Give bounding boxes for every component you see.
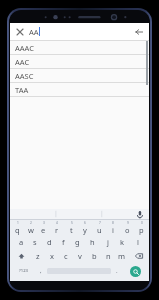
button[interactable]: 6	[78, 220, 92, 235]
button[interactable]: Back	[132, 25, 145, 38]
staticText: ,	[40, 267, 42, 275]
staticText: u	[97, 225, 102, 235]
button[interactable]: 7	[92, 220, 106, 235]
button[interactable]: 0	[134, 220, 148, 235]
button[interactable]: 9	[120, 220, 134, 235]
staticText: t	[70, 225, 73, 235]
button[interactable]: 5	[64, 220, 78, 235]
button[interactable]: m	[115, 249, 129, 263]
staticText: l	[137, 237, 139, 247]
button[interactable]: 8	[106, 220, 120, 235]
staticText: x	[50, 251, 54, 261]
staticText: 1	[17, 221, 19, 225]
staticText: 0	[141, 221, 143, 225]
staticText: j	[107, 237, 109, 247]
button[interactable]: l	[130, 235, 145, 249]
button[interactable]: 4	[50, 220, 64, 235]
staticText: p	[139, 225, 144, 235]
button[interactable]: Backspace	[129, 249, 148, 263]
button[interactable]: .	[111, 263, 123, 279]
staticText: 3	[43, 221, 45, 225]
staticText: 5	[71, 221, 73, 225]
button[interactable]: k	[115, 235, 130, 249]
staticText: s	[33, 237, 37, 247]
button[interactable]: f	[56, 235, 70, 249]
staticText: g	[75, 237, 80, 247]
button[interactable]: j	[100, 235, 115, 249]
staticText: a	[19, 237, 24, 247]
button[interactable]: v	[73, 249, 87, 263]
button[interactable]: Search	[130, 266, 141, 277]
staticText: 2	[30, 221, 32, 225]
button[interactable]: b	[87, 249, 101, 263]
staticText: TAA	[15, 85, 29, 95]
staticText: 8	[112, 221, 114, 225]
button[interactable]: c	[59, 249, 73, 263]
staticText: .	[116, 267, 118, 275]
button[interactable]: ?123	[12, 263, 35, 279]
staticText: o	[125, 225, 130, 235]
button[interactable]: x	[45, 249, 59, 263]
staticText: m	[118, 251, 126, 261]
button[interactable]: n	[101, 249, 115, 263]
staticText: z	[36, 251, 40, 261]
button[interactable]: d	[42, 235, 56, 249]
button[interactable]: s	[28, 235, 42, 249]
button[interactable]: ,	[35, 263, 47, 279]
staticText: r	[55, 225, 59, 235]
button[interactable]: z	[31, 249, 45, 263]
staticText: w	[28, 225, 34, 235]
staticText: 9	[127, 221, 129, 225]
staticText: 4	[56, 221, 58, 225]
button[interactable]: AASC	[10, 68, 149, 82]
staticText: ?123	[19, 268, 29, 274]
button[interactable]: g	[70, 235, 85, 249]
button[interactable]: Clear	[10, 23, 149, 40]
button[interactable]: AAC	[10, 54, 149, 68]
staticText: f	[62, 237, 65, 247]
staticText: n	[106, 251, 111, 261]
staticText: d	[47, 237, 52, 247]
staticText: 7	[99, 221, 101, 225]
staticText: AASC	[15, 71, 34, 81]
button[interactable]: 2	[24, 220, 37, 235]
staticText: q	[15, 225, 20, 235]
staticText: b	[92, 251, 97, 261]
button[interactable]: AAAC	[10, 40, 149, 54]
staticText: 6	[84, 221, 86, 225]
staticText: k	[120, 237, 125, 247]
staticText: h	[90, 237, 95, 247]
staticText: e	[41, 225, 46, 235]
staticText: AA	[29, 27, 39, 37]
staticText: v	[78, 251, 82, 261]
staticText: AAC	[15, 57, 30, 67]
staticText: i	[112, 225, 114, 235]
staticText: c	[64, 251, 68, 261]
button[interactable]: a	[14, 235, 28, 249]
button[interactable]: h	[85, 235, 100, 249]
button[interactable]: 1	[11, 220, 24, 235]
button[interactable]: 3	[37, 220, 50, 235]
staticText: y	[83, 225, 87, 235]
button[interactable]: TAA	[10, 82, 149, 96]
staticText: AAAC	[15, 43, 34, 53]
button[interactable]: Shift	[11, 249, 31, 263]
button[interactable]: Clear	[14, 26, 26, 38]
